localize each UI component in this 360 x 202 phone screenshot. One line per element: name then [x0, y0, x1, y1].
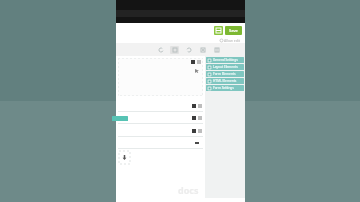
button[interactable]: General Settings	[206, 57, 244, 63]
button[interactable]: Tool 0	[156, 46, 165, 54]
button[interactable]: Insert element	[119, 151, 130, 164]
button[interactable]: Tool 2	[184, 46, 193, 54]
staticText: Layout Elements	[213, 65, 238, 69]
button[interactable]: Layout Elements	[206, 64, 244, 70]
staticText: Allow edit	[224, 38, 241, 43]
staticText: Form Settings	[213, 86, 234, 90]
staticText: HTML Elements	[213, 79, 237, 83]
button[interactable]: Tool 4	[212, 46, 221, 54]
button[interactable]: Form Elements	[206, 71, 244, 77]
button[interactable]: Edit element	[118, 58, 203, 96]
staticText: Save	[229, 28, 238, 33]
button[interactable]: Save	[225, 26, 242, 35]
button[interactable]: HTML Elements	[206, 78, 244, 84]
button[interactable]: Tool 3	[198, 46, 207, 54]
staticText: Form Elements	[213, 72, 236, 76]
button[interactable]: Save layout	[214, 26, 223, 35]
staticText: docs	[178, 184, 199, 196]
button[interactable]: Tool 1	[170, 46, 179, 54]
button[interactable]: Form Settings	[206, 85, 244, 91]
staticText: General Settings	[213, 58, 238, 62]
